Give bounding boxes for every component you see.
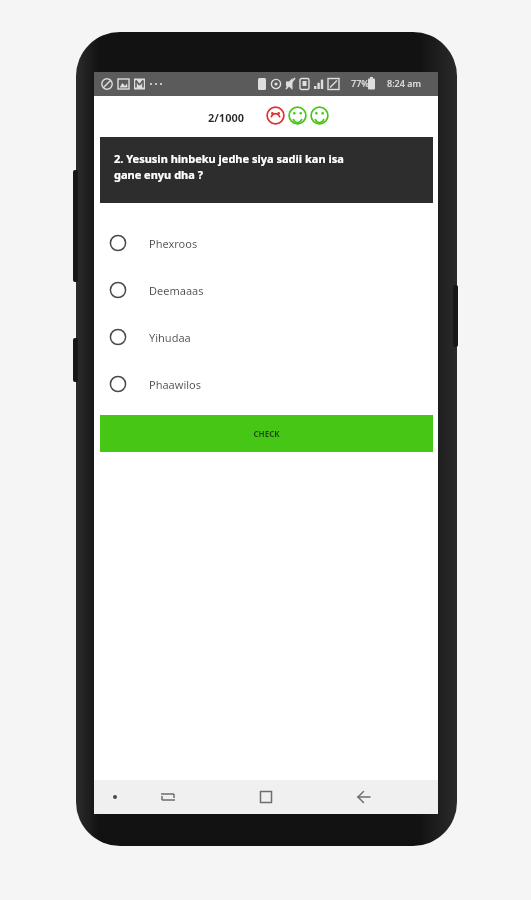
button[interactable]: Yihudaa	[100, 317, 433, 357]
staticText: CHECK	[253, 428, 280, 439]
staticText: Yihudaa	[149, 330, 191, 345]
button[interactable]: Switch apps	[156, 785, 180, 809]
button[interactable]: Keyboard indicator	[106, 788, 124, 806]
button[interactable]: CHECK	[100, 415, 433, 452]
staticText: 2. Yesusin hinbeku jedhe siya sadii kan …	[114, 151, 344, 182]
button[interactable]: Deemaaas	[100, 270, 433, 310]
button[interactable]: Correct answer	[288, 106, 307, 125]
button[interactable]: 2. Yesusin hinbeku jedhe siya sadii kan …	[100, 137, 433, 203]
button[interactable]: Phexroos	[100, 223, 433, 263]
staticText: Phaawilos	[149, 377, 202, 392]
staticText: 8:24 am	[387, 77, 421, 89]
button[interactable]: Back	[352, 785, 376, 809]
button[interactable]: Recent apps	[254, 785, 278, 809]
button[interactable]: Correct answer	[310, 106, 329, 125]
staticText: Phexroos	[149, 236, 198, 251]
staticText: 77%	[351, 77, 369, 89]
button[interactable]: Phaawilos	[100, 364, 433, 404]
button[interactable]: 2/1000	[208, 110, 245, 125]
staticText: Deemaaas	[149, 283, 204, 298]
button[interactable]: Wrong answer	[266, 106, 285, 125]
